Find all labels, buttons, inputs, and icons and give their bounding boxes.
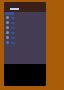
button[interactable]: [4, 15, 46, 20]
button[interactable]: [4, 20, 46, 25]
button[interactable]: Back: [4, 6, 46, 12]
button[interactable]: [4, 40, 46, 45]
button[interactable]: [4, 35, 46, 40]
button[interactable]: [4, 30, 46, 35]
button[interactable]: [4, 25, 46, 30]
